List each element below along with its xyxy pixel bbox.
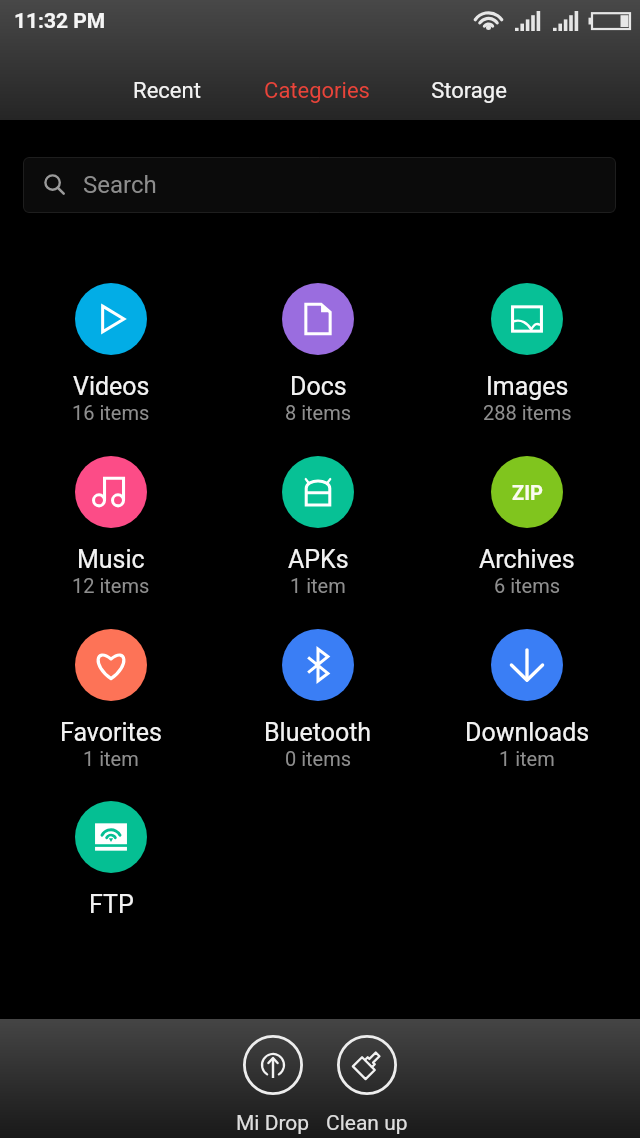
button[interactable]: Mi Drop bbox=[213, 1035, 333, 1136]
staticText: 1 item bbox=[499, 747, 555, 770]
button[interactable]: Clean up bbox=[307, 1035, 427, 1136]
staticText: 1 item bbox=[290, 574, 346, 597]
staticText: 6 items bbox=[494, 574, 561, 597]
button[interactable]: Storage bbox=[394, 68, 544, 114]
staticText: Recent bbox=[133, 78, 201, 104]
staticText: FTP bbox=[89, 890, 134, 919]
button[interactable]: ZIP bbox=[427, 456, 627, 597]
staticText: Docs bbox=[290, 372, 347, 401]
button[interactable]: Search bbox=[23, 157, 616, 213]
staticText: Videos bbox=[73, 372, 150, 401]
staticText: Archives bbox=[479, 545, 575, 574]
staticText: 1 item bbox=[83, 747, 139, 770]
button[interactable]: Downloads bbox=[427, 629, 627, 770]
staticText: APKs bbox=[288, 545, 349, 574]
staticText: Downloads bbox=[465, 718, 590, 747]
other: Clean up bbox=[337, 1035, 397, 1095]
staticText: Mi Drop bbox=[236, 1111, 310, 1136]
staticText: ZIP bbox=[512, 481, 543, 504]
button[interactable]: Bluetooth bbox=[218, 629, 418, 770]
other: Mi Drop bbox=[243, 1035, 303, 1095]
staticText: Categories bbox=[264, 78, 370, 104]
staticText: 0 items bbox=[285, 747, 352, 770]
staticText: Bluetooth bbox=[264, 718, 372, 747]
button[interactable]: Favorites bbox=[11, 629, 211, 770]
staticText: 288 items bbox=[483, 401, 572, 424]
staticText: 8 items bbox=[285, 401, 352, 424]
staticText: Images bbox=[486, 372, 569, 401]
staticText: Clean up bbox=[326, 1111, 408, 1136]
button[interactable]: APKs bbox=[218, 456, 418, 597]
button[interactable]: Categories bbox=[242, 68, 392, 114]
staticText: 11:32 PM bbox=[14, 9, 106, 34]
button[interactable]: Recent bbox=[92, 68, 242, 114]
staticText: Storage bbox=[431, 78, 507, 104]
button[interactable]: Images bbox=[427, 283, 627, 424]
button[interactable]: Docs bbox=[218, 283, 418, 424]
staticText: 12 items bbox=[72, 574, 150, 597]
staticText: Music bbox=[77, 545, 145, 574]
staticText: 16 items bbox=[72, 401, 150, 424]
button[interactable]: Videos bbox=[11, 283, 211, 424]
button[interactable]: Music bbox=[11, 456, 211, 597]
staticText: Search bbox=[83, 171, 157, 199]
button[interactable]: FTP bbox=[11, 801, 211, 942]
staticText: Favorites bbox=[60, 718, 162, 747]
